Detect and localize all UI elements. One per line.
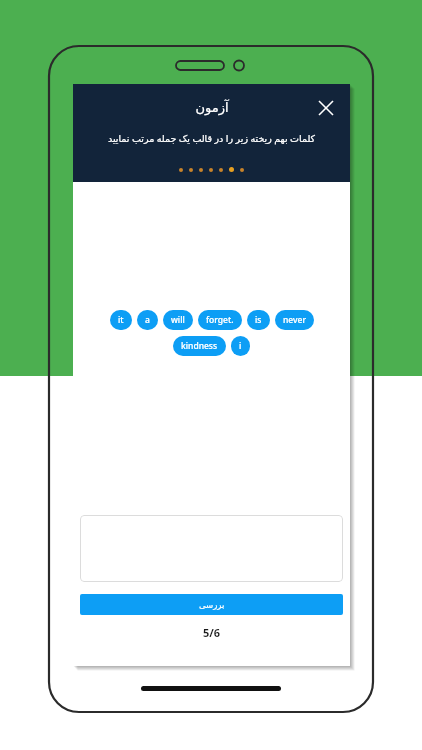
button[interactable]: will	[163, 310, 193, 330]
staticText: 5/6	[73, 625, 350, 640]
staticText: a	[145, 314, 150, 326]
staticText: بررسی	[199, 600, 225, 610]
button[interactable]: forget.	[198, 310, 242, 330]
button[interactable]: it	[110, 310, 132, 330]
button[interactable]: Close	[312, 94, 340, 122]
staticText: آزمون	[195, 100, 229, 115]
staticText: is	[255, 314, 262, 326]
button[interactable]: i	[231, 336, 250, 356]
button[interactable]: is	[247, 310, 270, 330]
staticText: کلمات بهم ریخته زیر را در قالب یک جمله م…	[73, 132, 350, 145]
button[interactable]: never	[275, 310, 314, 330]
staticText: it	[118, 314, 124, 326]
staticText: will	[171, 314, 185, 326]
staticText: never	[283, 314, 306, 326]
button[interactable]	[80, 515, 343, 582]
staticText: kindness	[181, 340, 218, 352]
button[interactable]: بررسی	[80, 594, 343, 615]
button[interactable]: kindness	[173, 336, 226, 356]
staticText: i	[239, 340, 242, 352]
staticText: forget.	[206, 314, 234, 326]
button[interactable]: a	[137, 310, 158, 330]
